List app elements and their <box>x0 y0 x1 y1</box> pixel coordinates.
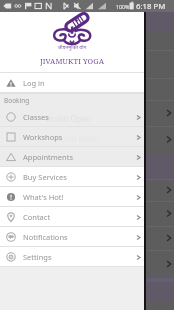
staticText: Buy Services <box>23 172 67 182</box>
button[interactable]: Buy Services <box>0 167 144 187</box>
staticText: Classes <box>23 112 49 122</box>
staticText: 100% <box>116 3 130 10</box>
staticText: Notifications <box>23 232 68 242</box>
button[interactable]: What's Hot! <box>0 187 144 207</box>
staticText: Contact <box>23 212 51 222</box>
staticText: जीवनमुक्ति योग <box>0 44 144 51</box>
button[interactable]: mukti Basic <box>0 127 144 147</box>
staticText: mukti Open <box>46 113 92 124</box>
button[interactable]: Log in <box>0 73 144 93</box>
button[interactable]: Notifications <box>0 227 144 247</box>
staticText: JIVAMUKTI YOGA <box>0 56 144 66</box>
button[interactable]: Settings <box>0 247 144 267</box>
staticText: mukti Basic <box>54 133 99 144</box>
staticText: Settings <box>23 252 52 262</box>
staticText: Workshops <box>23 132 63 142</box>
button[interactable]: mukti Open <box>0 107 144 127</box>
staticText: 6:18 PM <box>136 1 166 12</box>
staticText: Appointments <box>23 152 74 162</box>
button[interactable]: Appointments <box>0 147 144 167</box>
staticText: What's Hot! <box>23 192 64 202</box>
staticText: Booking <box>4 96 30 105</box>
button[interactable]: Contact <box>0 207 144 227</box>
staticText: Log in <box>23 78 45 88</box>
